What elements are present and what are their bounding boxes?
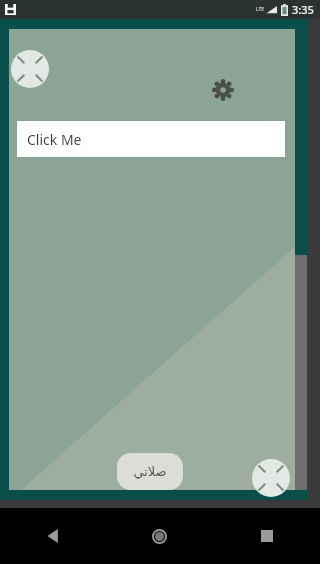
button[interactable]: Recent apps — [213, 508, 320, 564]
staticText: صلاتي — [133, 464, 167, 479]
button[interactable]: Settings — [207, 74, 239, 106]
button[interactable]: Click Me — [17, 121, 285, 157]
button[interactable]: Back — [0, 508, 106, 564]
button[interactable]: Qibla compass — [252, 459, 290, 497]
button[interactable]: صلاتي — [117, 453, 183, 490]
button[interactable]: Qibla compass — [11, 50, 49, 88]
button[interactable]: Home — [106, 508, 213, 564]
staticText: LTE — [256, 6, 265, 13]
staticText: Click Me — [27, 130, 82, 149]
staticText: 3:35 — [292, 2, 314, 17]
